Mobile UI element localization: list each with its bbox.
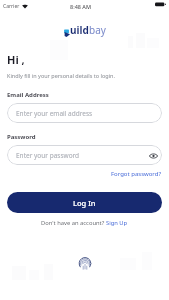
staticText: Password [7, 133, 36, 141]
button[interactable]: Log In [7, 192, 162, 213]
button[interactable]: Fingerprint login [76, 254, 94, 272]
button[interactable]: Forgot password? [111, 170, 162, 178]
staticText: bay [89, 23, 106, 37]
staticText: Hi , [7, 52, 25, 67]
button[interactable]: Show password [148, 150, 159, 161]
button[interactable]: Sign Up [106, 219, 128, 227]
staticText: Email Address [7, 91, 49, 99]
staticText: Enter your password [16, 151, 80, 160]
button[interactable]: Enter your email address [7, 103, 162, 123]
staticText: Log In [73, 198, 96, 208]
staticText: Sign Up [106, 219, 128, 227]
staticText: Enter your email address [16, 109, 93, 118]
staticText: Forgot password? [111, 170, 162, 178]
staticText: 8:48 AM [70, 3, 92, 10]
staticText: Kindly fill in your personal details to … [7, 72, 115, 79]
staticText: uild [70, 23, 89, 37]
staticText: Carrier [3, 3, 20, 10]
staticText: Don't have an account? [41, 219, 106, 227]
button[interactable]: Enter your password [7, 145, 162, 165]
